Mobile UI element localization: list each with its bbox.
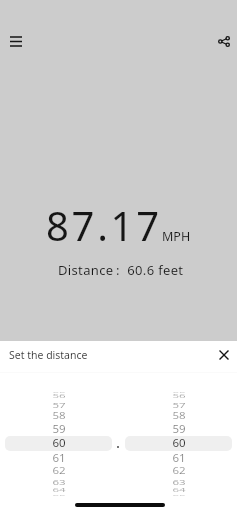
other: Whole feet, 60	[5, 373, 112, 512]
staticText: Distance : 60.6 feet	[58, 261, 184, 279]
staticText: 64	[172, 486, 186, 493]
staticText: 58	[172, 409, 186, 423]
button[interactable]: Share	[206, 23, 237, 59]
staticText: 87.17	[46, 198, 162, 252]
staticText: 61	[52, 450, 66, 466]
button[interactable]	[125, 436, 232, 451]
staticText: 57	[52, 400, 66, 410]
staticText: 62	[172, 464, 186, 478]
staticText: 58	[52, 409, 66, 423]
staticText: 59	[172, 421, 186, 437]
staticText: 57	[172, 400, 186, 410]
staticText: 56	[172, 392, 186, 399]
staticText: 59	[52, 421, 66, 437]
staticText: 65	[52, 494, 66, 496]
staticText: 62	[52, 464, 66, 478]
staticText: Set the distance	[9, 348, 88, 362]
staticText: 60	[52, 435, 66, 451]
staticText: 55	[52, 391, 66, 393]
staticText: 65	[172, 494, 186, 496]
staticText: 55	[172, 391, 186, 393]
staticText: 63	[172, 477, 186, 487]
staticText: 63	[52, 477, 66, 487]
button[interactable]	[5, 436, 112, 451]
staticText: 60	[172, 435, 186, 451]
staticText: MPH	[162, 228, 191, 245]
button[interactable]: Open navigation menu	[0, 23, 34, 59]
staticText: 61	[172, 450, 186, 466]
staticText: 56	[52, 392, 66, 399]
staticText: 64	[52, 486, 66, 493]
other: Fractional feet, 60	[125, 373, 232, 512]
button[interactable]: Close	[211, 342, 237, 368]
